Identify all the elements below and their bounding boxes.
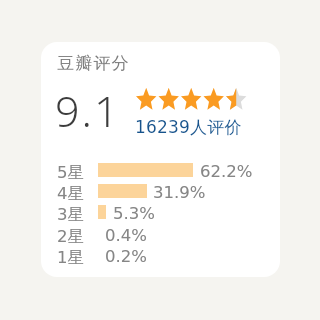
button[interactable]: 1星 (53, 246, 267, 266)
staticText: 3星 (57, 204, 84, 224)
staticText: 5.3% (113, 204, 155, 223)
other: 4.5 stars out of 5 (134, 86, 252, 112)
staticText: 豆瓣评分 (57, 53, 130, 74)
staticText: 9.1 (55, 81, 121, 140)
staticText: 2星 (57, 226, 84, 246)
button[interactable]: 4星 (53, 182, 267, 202)
button[interactable]: 2星 (53, 225, 267, 245)
staticText: 0.2% (105, 247, 147, 266)
button[interactable]: 3星 (53, 203, 267, 223)
staticText: 31.9% (153, 183, 206, 202)
staticText: 62.2% (200, 162, 253, 181)
button[interactable]: 16239人评价 (135, 117, 242, 138)
staticText: 5星 (57, 162, 84, 182)
button[interactable]: 豆瓣评分 (41, 42, 280, 277)
staticText: 1星 (57, 247, 84, 267)
staticText: 4星 (57, 183, 84, 203)
staticText: 0.4% (105, 226, 147, 245)
button[interactable]: 5星 (53, 161, 267, 181)
